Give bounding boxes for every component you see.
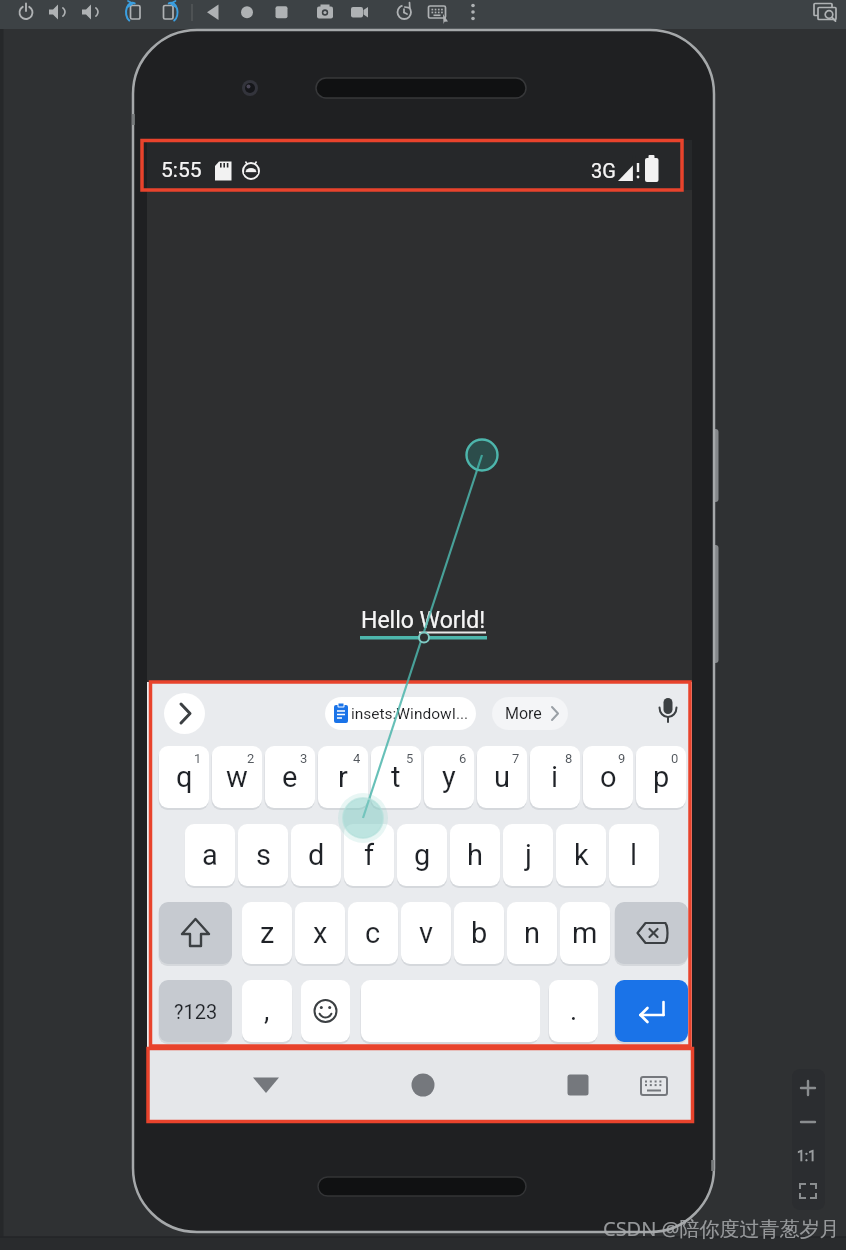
staticText: insets:WindowI... [351, 705, 469, 723]
button[interactable]: l [609, 824, 659, 886]
staticText: e [282, 760, 298, 794]
staticText: o [600, 760, 617, 794]
button[interactable]: m [560, 902, 610, 964]
button[interactable] [246, 1065, 286, 1105]
button[interactable]: b [454, 902, 504, 964]
button[interactable]: ?123 [159, 980, 232, 1042]
button[interactable]: n [507, 902, 557, 964]
button[interactable]: u [477, 746, 527, 808]
button[interactable]: t [371, 746, 421, 808]
staticText: p [653, 760, 670, 794]
button[interactable] [615, 980, 688, 1042]
button[interactable] [313, 0, 337, 28]
staticText: ?123 [174, 1000, 218, 1023]
staticText: 8 [565, 751, 573, 766]
staticText: g [414, 838, 431, 872]
button[interactable]: x [295, 902, 345, 964]
staticText: z [260, 916, 275, 950]
staticText: 3G [591, 159, 616, 182]
button[interactable] [558, 1065, 598, 1105]
staticText: 3 [300, 751, 308, 766]
button[interactable]: . [549, 980, 598, 1042]
button[interactable]: q [159, 746, 209, 808]
button[interactable]: e [265, 746, 315, 808]
staticText: 2 [247, 751, 255, 766]
staticText: 9 [618, 751, 626, 766]
button[interactable] [159, 902, 232, 964]
button[interactable]: d [291, 824, 341, 886]
staticText: q [176, 760, 193, 794]
button[interactable]: a [185, 824, 235, 886]
staticText: f [364, 838, 375, 872]
button[interactable] [201, 0, 225, 28]
staticText: k [574, 838, 589, 872]
staticText: 5:55 [161, 158, 202, 183]
button[interactable] [615, 902, 688, 964]
button[interactable] [403, 1065, 443, 1105]
button[interactable]: h [450, 824, 500, 886]
staticText: More [505, 704, 542, 723]
staticText: h [467, 838, 483, 872]
button[interactable] [45, 0, 69, 28]
button[interactable] [77, 0, 101, 28]
button[interactable]: More [492, 697, 568, 730]
button[interactable] [814, 0, 838, 28]
staticText: 0 [671, 751, 679, 766]
button[interactable]: r [318, 746, 368, 808]
staticText: w [226, 760, 248, 794]
staticText: 1:1 [797, 1148, 817, 1164]
button[interactable]: o [583, 746, 633, 808]
button[interactable]: w [212, 746, 262, 808]
staticText: b [471, 916, 488, 950]
button[interactable] [164, 693, 205, 734]
button[interactable] [791, 1176, 825, 1209]
button[interactable] [269, 0, 293, 28]
staticText: , [264, 995, 270, 1027]
button[interactable] [14, 0, 38, 28]
button[interactable] [347, 0, 371, 28]
staticText: s [256, 838, 271, 872]
button[interactable]: k [556, 824, 606, 886]
button[interactable]: insets:WindowI... [325, 697, 476, 730]
staticText: x [313, 916, 328, 950]
button[interactable] [652, 696, 685, 729]
staticText: c [365, 916, 381, 950]
staticText: r [338, 760, 348, 794]
button[interactable] [301, 980, 350, 1042]
button[interactable] [425, 0, 449, 28]
staticText: m [572, 916, 598, 950]
button[interactable] [791, 1106, 825, 1139]
staticText: Hello World! [361, 607, 486, 634]
button[interactable]: c [348, 902, 398, 964]
button[interactable]: g [397, 824, 447, 886]
button[interactable] [157, 0, 181, 28]
button[interactable]: f [344, 824, 394, 886]
button[interactable]: s [238, 824, 288, 886]
button[interactable]: i [530, 746, 580, 808]
staticText: 5 [406, 751, 414, 766]
button[interactable]: , [242, 980, 292, 1042]
button[interactable]: v [401, 902, 451, 964]
button[interactable] [461, 0, 485, 28]
button[interactable] [634, 1066, 674, 1106]
staticText: 7 [512, 751, 520, 766]
button[interactable] [392, 0, 416, 28]
button[interactable]: y [424, 746, 474, 808]
button[interactable]: z [242, 902, 292, 964]
staticText: 1 [194, 751, 202, 766]
button[interactable]: p [636, 746, 686, 808]
button[interactable]: j [503, 824, 553, 886]
button[interactable] [791, 1140, 825, 1173]
staticText: t [391, 760, 401, 794]
staticText: . [570, 995, 578, 1027]
staticText: y [442, 760, 456, 794]
button[interactable] [235, 0, 259, 28]
staticText: n [524, 916, 541, 950]
button[interactable] [122, 0, 146, 28]
staticText: i [551, 760, 559, 794]
staticText: a [202, 838, 218, 872]
staticText: CSDN @陪你度过青葱岁月 [603, 1215, 840, 1242]
button[interactable] [791, 1072, 825, 1105]
staticText: u [494, 760, 510, 794]
